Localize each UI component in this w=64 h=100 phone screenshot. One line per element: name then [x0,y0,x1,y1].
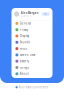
staticText: Screen Time [20,53,36,57]
staticText: General [20,22,31,25]
staticText: Battery [20,59,29,63]
staticText: Edit [44,13,47,15]
button[interactable]: Storage [11,64,52,71]
button[interactable]: Privacy [11,27,52,33]
button[interactable]: Display [11,33,52,39]
staticText: Focus [20,47,27,50]
button[interactable]: Battery [11,58,52,64]
staticText: Privacy [20,28,28,31]
button[interactable]: About [11,71,52,77]
staticText: Sounds [20,40,30,44]
staticText: Alex Morgan [21,11,39,15]
button[interactable]: Focus [11,45,52,52]
staticText: Storage [20,66,30,69]
button[interactable]: Sounds [11,39,52,45]
button[interactable]: Screen Time [11,52,52,58]
staticText: Display [20,34,29,38]
button[interactable]: Edit [41,12,50,16]
staticText: About [20,72,29,75]
button[interactable]: General [11,20,52,26]
staticText: Your data is protected [18,85,48,89]
button[interactable]: Alex Morgan [11,8,52,20]
staticText: alex@icloud.com [21,15,32,17]
